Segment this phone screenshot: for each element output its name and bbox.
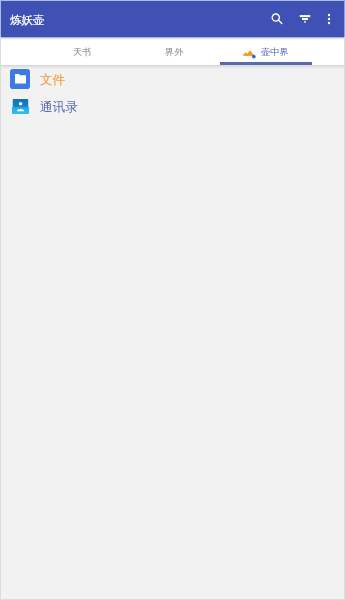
button[interactable]: 壶中界	[220, 37, 312, 65]
staticText: 炼妖壶	[10, 13, 45, 27]
button[interactable]: Filter	[293, 7, 317, 31]
staticText: 界外	[165, 46, 184, 58]
button[interactable]: 天书	[36, 37, 128, 65]
staticText: 文件	[40, 72, 65, 88]
button[interactable]: 界外	[128, 37, 220, 65]
button[interactable]: 文件	[1, 65, 344, 92]
staticText: 通讯录	[40, 99, 78, 115]
staticText: 天书	[73, 46, 92, 58]
button[interactable]: Search	[265, 7, 289, 31]
button[interactable]: More options	[317, 7, 341, 31]
button[interactable]: 通讯录	[1, 92, 344, 119]
staticText: 壶中界	[261, 46, 289, 58]
